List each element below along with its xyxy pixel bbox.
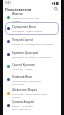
staticText: Иванов	[12, 12, 23, 16]
button[interactable]: Иванов	[5, 12, 59, 22]
staticText: Пользователи	[5, 7, 32, 12]
button[interactable]: Терещенко Анна	[5, 22, 59, 35]
button[interactable]: Бровкин Дмитрий	[5, 48, 59, 60]
staticText: онлайн	[12, 19, 21, 22]
staticText: Новиков Иван	[12, 75, 33, 79]
staticText: Инженер · сервис	[12, 67, 33, 70]
staticText: был вчера	[12, 82, 25, 85]
staticText: Технический специалист	[12, 79, 41, 82]
button[interactable]: Сергей Кузьмин	[5, 60, 59, 72]
staticText: Менеджер · отдел продаж	[12, 29, 43, 32]
staticText: Терещенко Анна	[12, 25, 36, 29]
staticText: Сергей Кузьмин	[12, 63, 36, 67]
button[interactable]: Петров Сергей	[5, 35, 59, 48]
staticText: был 3 дня назад	[12, 107, 31, 110]
staticText: Менеджер по работе с клиентами	[12, 55, 52, 58]
staticText: Петров Сергей	[12, 38, 34, 42]
button[interactable]: Шевченко Мария	[5, 87, 59, 99]
button[interactable]: Новиков Иван	[5, 72, 59, 87]
staticText: Шевченко Мария	[12, 88, 38, 92]
staticText: Логист · склад №2	[12, 104, 33, 107]
staticText: Громов Андрей	[12, 100, 35, 104]
button[interactable]: Громов Андрей	[5, 99, 59, 111]
staticText: онлайн	[12, 95, 21, 98]
staticText: 9:41	[5, 1, 11, 5]
staticText: Оператор · техподдержка клиентов	[12, 42, 54, 45]
staticText: Администратор систем	[12, 16, 39, 19]
button[interactable]: Search	[53, 6, 59, 12]
staticText: Бухгалтер · финансовый отдел	[12, 92, 48, 95]
staticText: Бровкин Дмитрий	[12, 51, 39, 55]
